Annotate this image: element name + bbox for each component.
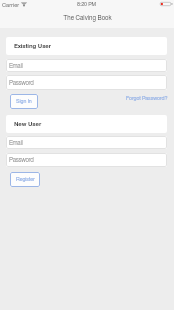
staticText: Email (9, 63, 23, 69)
staticText: Password (9, 157, 34, 163)
staticText: Email (9, 140, 23, 146)
button[interactable]: Email (6, 59, 167, 72)
button[interactable]: Forgot Password? (124, 94, 170, 104)
other: Wi-Fi signal (21, 2, 27, 6)
staticText: Sign In (16, 99, 32, 104)
staticText: Password (9, 80, 34, 86)
staticText: Carrier (2, 2, 20, 8)
button[interactable]: Register (10, 172, 40, 187)
staticText: 8:20 PM (77, 2, 96, 7)
button[interactable]: Existing User (6, 37, 167, 55)
staticText: Existing User (14, 43, 52, 49)
button[interactable]: Email (6, 136, 167, 149)
staticText: New User (14, 121, 42, 127)
button[interactable]: Sign In (10, 94, 38, 109)
button[interactable]: New User (6, 115, 167, 133)
staticText: The Calving Book (63, 15, 112, 21)
button[interactable]: Password (6, 153, 167, 167)
button[interactable]: Password (6, 75, 167, 90)
staticText: Register (16, 177, 35, 182)
other: Battery low (160, 2, 173, 6)
staticText: Forgot Password? (126, 96, 168, 102)
